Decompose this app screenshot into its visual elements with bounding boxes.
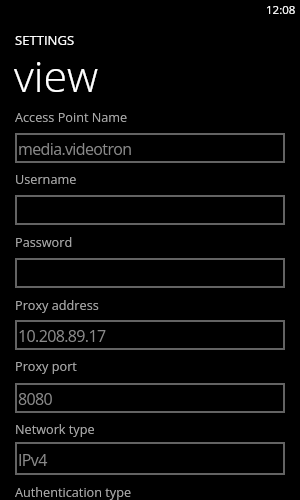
- button[interactable]: 8080: [15, 383, 285, 413]
- staticText: 12:08: [266, 2, 296, 18]
- staticText: Access Point Name: [15, 108, 128, 125]
- staticText: Network type: [15, 420, 95, 437]
- button[interactable]: SETTINGS: [15, 31, 75, 49]
- staticText: Proxy address: [15, 296, 99, 313]
- button[interactable]: IPv4: [15, 442, 285, 475]
- staticText: Proxy port: [15, 357, 77, 374]
- staticText: 10.208.89.17: [18, 325, 106, 347]
- button[interactable]: [15, 195, 285, 225]
- button[interactable]: media.videotron: [15, 133, 285, 163]
- staticText: 8080: [18, 388, 53, 410]
- staticText: Password: [15, 233, 73, 250]
- staticText: IPv4: [18, 449, 47, 471]
- button[interactable]: [15, 258, 285, 288]
- staticText: media.videotron: [18, 138, 132, 160]
- staticText: Username: [15, 170, 77, 187]
- staticText: view: [14, 46, 99, 105]
- button[interactable]: 10.208.89.17: [15, 320, 285, 350]
- staticText: Authentication type: [15, 483, 132, 500]
